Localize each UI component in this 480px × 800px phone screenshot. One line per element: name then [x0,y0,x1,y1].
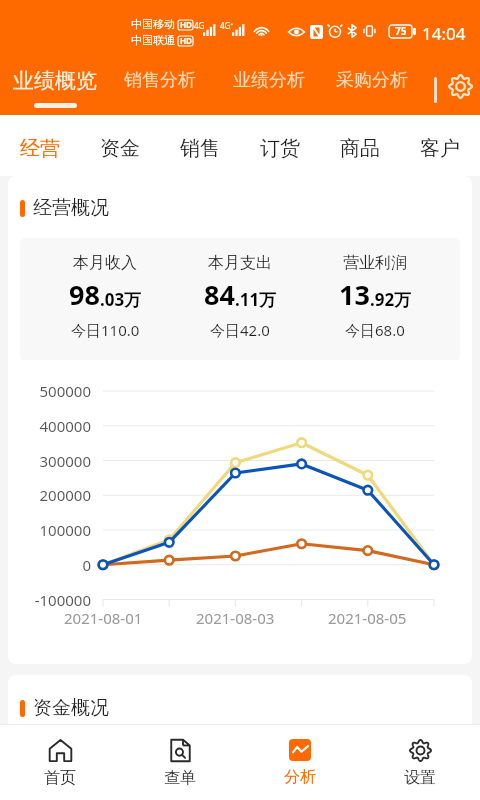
button[interactable]: 业绩分析 [214,55,324,105]
staticText: 采购分析 [336,69,408,92]
staticText: HD [180,19,192,30]
staticText: 本月支出 [208,253,272,273]
staticText: 13 [339,276,370,313]
button[interactable]: 业绩概览 [0,55,110,115]
staticText: 业绩概览 [13,68,97,94]
button[interactable]: 查单 [120,725,240,800]
button[interactable]: Settings [445,71,475,101]
staticText: 98 [69,276,100,313]
staticText: 设置 [404,768,436,788]
staticText: 本月收入 [73,253,137,273]
staticText: 4G [194,20,205,31]
staticText: 销售分析 [124,69,196,92]
staticText: 75 [395,24,407,38]
staticText: 今日110.0 [71,320,140,340]
staticText: 100000 [39,520,91,540]
button[interactable]: 分析 [240,725,360,800]
staticText: 2021-08-01 [64,608,143,628]
staticText: 中国联通 [131,33,175,47]
button[interactable]: 客户 [400,119,480,177]
staticText: 资金概况 [33,696,109,720]
staticText: 4G⁺ [220,20,234,31]
staticText: 资金 [100,136,140,161]
button[interactable]: 销售分析 [105,55,215,105]
staticText: 客户 [420,136,460,161]
button[interactable]: 经营 [0,119,80,177]
staticText: HD [180,35,192,46]
staticText: 经营 [20,136,60,161]
button[interactable]: 销售 [160,119,240,177]
staticText: 分析 [284,767,316,787]
staticText: 400000 [39,416,91,436]
staticText: 300000 [39,451,91,471]
staticText: 84 [204,276,235,313]
button[interactable]: 采购分析 [317,55,427,105]
staticText: 业绩分析 [233,69,305,92]
staticText: 营业利润 [343,253,407,273]
button[interactable]: 资金 [80,119,160,177]
staticText: 销售 [180,136,220,161]
staticText: 中国移动 [131,17,175,31]
staticText: 经营概况 [33,196,109,220]
staticText: 首页 [44,768,76,788]
staticText: 查单 [164,768,196,788]
staticText: 500000 [39,381,91,401]
staticText: 商品 [340,136,380,161]
staticText: 今日68.0 [345,320,405,340]
staticText: -100000 [34,590,91,610]
button[interactable]: 首页 [0,725,120,800]
button[interactable]: 商品 [320,119,400,177]
staticText: 14:04 [422,22,466,45]
staticText: 0 [82,555,91,575]
staticText: 2021-08-03 [196,608,275,628]
staticText: .92万 [370,288,412,311]
button[interactable]: 设置 [360,725,480,800]
staticText: 订货 [260,136,300,161]
staticText: .03万 [100,288,142,311]
staticText: 今日42.0 [210,320,270,340]
staticText: .11万 [235,288,277,311]
button[interactable]: 订货 [240,119,320,177]
staticText: 2021-08-05 [328,608,407,628]
staticText: 200000 [39,485,91,505]
